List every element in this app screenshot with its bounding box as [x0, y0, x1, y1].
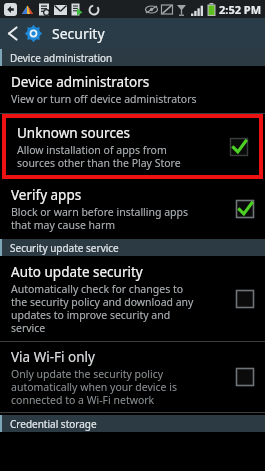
staticText: Security [52, 24, 105, 43]
button[interactable]: Unknown sources [6, 118, 259, 175]
staticText: Automatically check for changes to the s… [11, 282, 194, 335]
staticText: Allow installation of apps from sources … [17, 143, 181, 170]
staticText: Unknown sources [17, 124, 130, 142]
staticText: Device administrators [11, 73, 150, 91]
staticText: Verify apps [11, 186, 82, 204]
staticText: View or turn off device administrators [11, 92, 197, 106]
staticText: Only update the security policy automati… [11, 367, 177, 407]
staticText: Block or warn before installing apps tha… [11, 205, 189, 232]
button[interactable]: Via Wi-Fi only [0, 342, 265, 412]
button[interactable]: Auto update security [0, 256, 265, 341]
staticText: Security update service [10, 241, 119, 255]
staticText: Auto update security [11, 263, 143, 281]
staticText: 2:52 PM [219, 2, 262, 17]
button[interactable]: Verify apps [0, 179, 265, 239]
staticText: Device administration [10, 51, 113, 65]
button[interactable]: Navigate up, Security [0, 18, 265, 49]
staticText: Via Wi-Fi only [11, 348, 95, 366]
button[interactable]: Device administrators [0, 66, 265, 113]
staticText: Credential storage [10, 417, 97, 431]
